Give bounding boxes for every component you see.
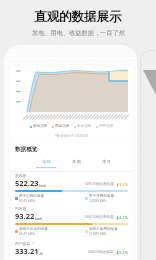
staticText: 并网功率: [99, 124, 114, 129]
button[interactable]: 发电功率: [30, 124, 48, 129]
staticText: 与昨日相比收益: [88, 250, 114, 255]
staticText: 60.41 kWh: [19, 232, 35, 236]
button[interactable]: 用户收益: [15, 241, 128, 256]
staticText: 4.2%: [119, 215, 128, 220]
staticText: 110.85 kWh: [89, 232, 107, 236]
staticText: 60.41 kWh: [19, 199, 35, 203]
staticText: 元: [39, 251, 44, 256]
staticText: 与昨日相比发电量: [85, 182, 114, 187]
other: 说明: [32, 242, 35, 245]
button[interactable]: 用于自用的电量: [15, 194, 85, 203]
button[interactable]: 本周: [61, 159, 91, 167]
button[interactable]: 用电功率: [52, 124, 70, 129]
staticText: 数据概览: [15, 146, 38, 153]
staticText: 522.23: [15, 178, 39, 188]
staticText: 来源于光伏的电量: [19, 227, 48, 232]
button[interactable]: 并网功率: [96, 124, 114, 129]
staticText: 用于并网的电量: [89, 194, 115, 199]
button[interactable]: 发电量: [15, 173, 128, 203]
staticText: 120.85 kWh: [89, 199, 107, 203]
staticText: 与昨日相比用电量: [85, 215, 114, 220]
staticText: 电池功率: [77, 124, 92, 129]
staticText: 333.21: [15, 246, 39, 256]
staticText: 今日: [42, 159, 51, 165]
staticText: 直观的数据展示: [34, 9, 122, 25]
staticText: 用户收益: [15, 241, 31, 246]
staticText: 用电量: [15, 206, 27, 211]
staticText: 发电、用电、收益数据，一目了然: [32, 29, 125, 37]
button[interactable]: 本月: [91, 159, 121, 167]
staticText: 3.2%: [119, 182, 128, 187]
button[interactable]: 来源于电网的电量: [85, 227, 128, 236]
staticText: *数据更新于 10:25:06: [55, 133, 89, 138]
staticText: 用电功率: [55, 124, 70, 129]
staticText: kwh: [39, 183, 47, 188]
staticText: kwh: [35, 216, 43, 221]
staticText: 发电量: [15, 173, 27, 178]
staticText: 9.2%: [119, 250, 128, 255]
staticText: 本月: [102, 159, 111, 165]
staticText: 用于自用的电量: [19, 194, 45, 199]
button[interactable]: 用电量: [15, 206, 128, 236]
button[interactable]: 今日: [31, 159, 61, 168]
staticText: 93.22: [15, 211, 35, 221]
staticText: 来源于电网的电量: [89, 227, 118, 232]
staticText: 发电功率: [33, 124, 48, 129]
button[interactable]: 用于并网的电量: [85, 194, 128, 203]
staticText: 本周: [72, 159, 81, 165]
button[interactable]: 电池功率: [74, 124, 92, 129]
button[interactable]: 来源于光伏的电量: [15, 227, 85, 236]
